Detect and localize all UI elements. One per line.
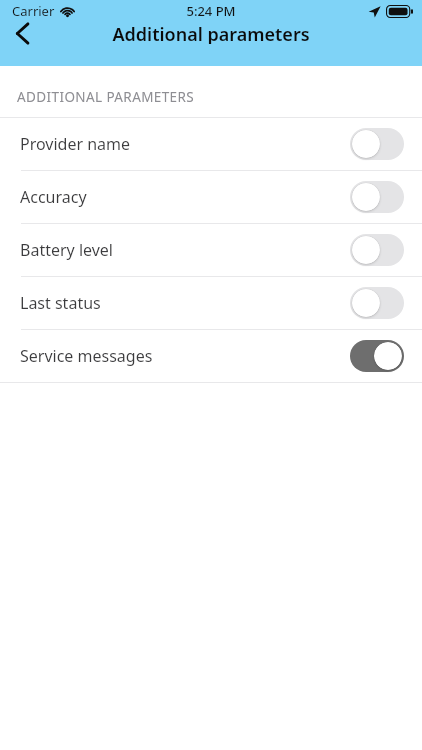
button[interactable]: Toggle Service messages: [350, 340, 404, 372]
staticText: ADDITIONAL PARAMETERS: [17, 88, 195, 106]
staticText: Carrier: [12, 2, 55, 20]
staticText: Additional parameters: [112, 22, 310, 44]
button[interactable]: Last status: [0, 277, 422, 329]
staticText: Service messages: [20, 345, 153, 367]
button[interactable]: Toggle Battery level: [350, 234, 404, 266]
staticText: Last status: [20, 292, 101, 314]
button[interactable]: Back: [0, 22, 44, 44]
staticText: Provider name: [20, 133, 131, 155]
button[interactable]: Provider name: [0, 118, 422, 170]
button[interactable]: Accuracy: [0, 171, 422, 223]
staticText: Accuracy: [20, 186, 87, 208]
button[interactable]: Battery level: [0, 224, 422, 276]
button[interactable]: Toggle Accuracy: [350, 181, 404, 213]
staticText: 5:24 PM: [186, 2, 236, 20]
button[interactable]: Toggle Provider name: [350, 128, 404, 160]
button[interactable]: Toggle Last status: [350, 287, 404, 319]
staticText: Battery level: [20, 239, 113, 261]
button[interactable]: Service messages: [0, 330, 422, 382]
